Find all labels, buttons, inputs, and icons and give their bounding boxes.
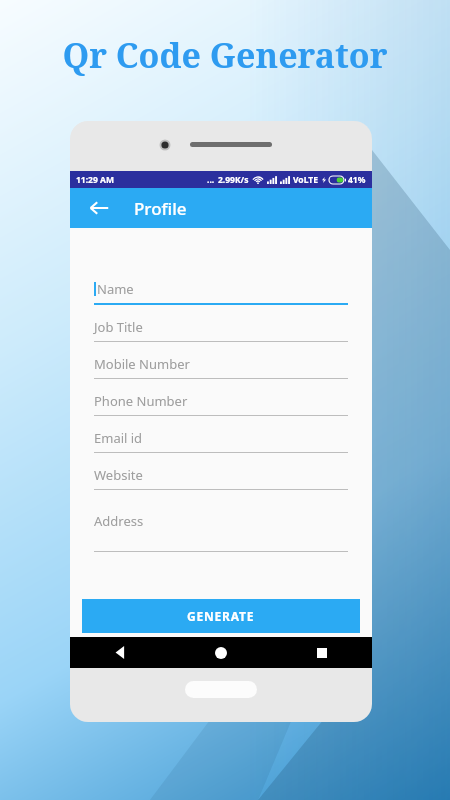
button[interactable]: Back xyxy=(70,637,170,668)
staticText: 2.99K/s xyxy=(218,174,249,186)
staticText: Mobile Number xyxy=(94,355,190,373)
button[interactable]: Mobile Number xyxy=(94,355,348,379)
staticText: Profile xyxy=(134,197,187,220)
button[interactable]: Recents xyxy=(271,637,372,668)
staticText: ... xyxy=(207,174,215,186)
button[interactable]: Phone Number xyxy=(94,392,348,416)
staticText: Phone Number xyxy=(94,392,188,410)
button[interactable]: Website xyxy=(94,466,348,490)
button[interactable]: Address xyxy=(94,512,348,552)
staticText: 11:29 AM xyxy=(76,174,114,186)
staticText: GENERATE xyxy=(187,608,255,624)
button[interactable]: Home button xyxy=(185,681,257,698)
button[interactable]: GENERATE xyxy=(82,599,360,633)
button[interactable]: Job Title xyxy=(94,318,348,342)
staticText: Qr Code Generator xyxy=(62,32,388,78)
staticText: Job Title xyxy=(94,318,143,336)
staticText: Address xyxy=(94,512,144,530)
button[interactable]: Home xyxy=(170,637,271,668)
button[interactable]: Back xyxy=(86,195,112,221)
staticText: Website xyxy=(94,466,143,484)
button[interactable]: Email id xyxy=(94,429,348,453)
button[interactable]: Name xyxy=(94,280,348,305)
staticText: VoLTE xyxy=(293,174,318,186)
staticText: Email id xyxy=(94,429,143,447)
staticText: 41% xyxy=(348,174,366,186)
staticText: Name xyxy=(97,280,134,298)
